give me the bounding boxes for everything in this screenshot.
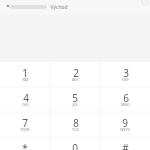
- button[interactable]: #: [100, 137, 150, 150]
- staticText: ABC: [72, 77, 79, 82]
- button[interactable]: 6: [100, 87, 150, 112]
- button[interactable]: 5: [50, 87, 100, 112]
- button[interactable]: 1: [0, 62, 50, 87]
- staticText: DEF: [122, 77, 129, 82]
- button[interactable]: 9: [100, 112, 150, 137]
- button[interactable]: 3: [100, 62, 150, 87]
- staticText: 7: [22, 116, 28, 130]
- staticText: JKL: [72, 102, 78, 107]
- staticText: 3: [123, 66, 129, 80]
- button[interactable]: 7: [0, 112, 50, 137]
- staticText: GHI: [22, 102, 29, 107]
- staticText: #: [122, 141, 129, 150]
- staticText: 9: [122, 116, 128, 130]
- staticText: 4: [23, 91, 29, 105]
- staticText: 2: [73, 66, 79, 80]
- button[interactable]: Power: [134, 0, 150, 12]
- staticText: 1: [22, 66, 28, 80]
- staticText: Východ: [50, 4, 68, 11]
- staticText: WXYZ: [120, 127, 130, 132]
- staticText: 0: [72, 141, 78, 150]
- button[interactable]: 2: [50, 62, 100, 87]
- button[interactable]: *: [0, 137, 50, 150]
- button[interactable]: 4: [0, 87, 50, 112]
- button[interactable]: 8: [50, 112, 100, 137]
- staticText: 6: [123, 91, 129, 105]
- staticText: PQRS: [20, 127, 30, 132]
- button[interactable]: 0: [50, 137, 100, 150]
- staticText: *: [22, 141, 28, 150]
- staticText: 5: [72, 91, 78, 105]
- staticText: 8: [73, 116, 79, 130]
- staticText: MNO: [121, 102, 130, 107]
- staticText: TUV: [72, 127, 79, 132]
